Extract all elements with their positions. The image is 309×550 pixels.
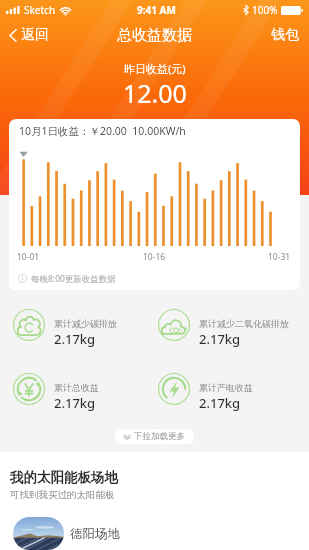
staticText: 返回 [21,26,49,44]
staticText: Sketch [24,3,56,17]
staticText: 德阳场地 [70,526,120,542]
staticText: 总收益数据 [117,26,192,45]
staticText: 2.17kg [54,330,96,348]
staticText: 昨日收益(元) [124,61,186,76]
staticText: 9:41 AM [137,3,176,17]
staticText: 可找到我买过的太阳能板 [10,489,115,501]
staticText: 2.17kg [199,394,241,412]
staticText: 累计减少碳排放 [54,318,117,329]
staticText: 每晚8:00更新收益数据 [31,273,116,285]
button[interactable]: 德阳场地 [0,517,309,550]
button[interactable]: 钱包 [259,21,309,49]
button[interactable]: 累计减少二氧化碳排放 [145,307,309,350]
button[interactable]: 累计产电收益 [145,371,309,414]
staticText: 我的太阳能板场地 [10,469,118,486]
staticText: 累计产电收益 [199,382,253,393]
staticText: 10月1日收益：￥20.00 10.00KW/h [19,124,186,138]
staticText: 10-01 [17,251,40,263]
staticText: 累计总收益 [54,382,99,393]
staticText: 下拉加载更多 [134,431,185,442]
staticText: 2.17kg [54,394,96,412]
button[interactable]: 返回 [0,21,59,49]
staticText: 钱包 [271,26,299,44]
staticText: 12.00 [123,76,187,110]
staticText: 10-16 [143,251,166,263]
staticText: 100% [252,3,278,17]
staticText: 10-31 [268,251,291,263]
staticText: 2.17kg [199,330,241,348]
staticText: 累计减少二氧化碳排放 [199,318,289,329]
button[interactable]: 累计减少碳排放 [0,307,145,350]
button[interactable]: 累计总收益 [0,371,145,414]
button[interactable]: 下拉加载更多 [115,429,194,444]
